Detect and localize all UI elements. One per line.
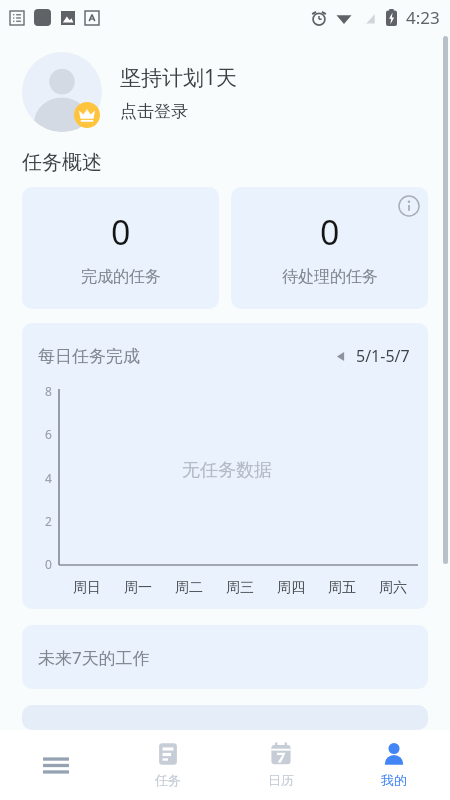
button[interactable]: 日历	[224, 730, 337, 800]
staticText: 周三	[226, 579, 254, 597]
staticText: 未来7天的工作	[38, 646, 150, 669]
staticText: 8	[45, 383, 52, 399]
staticText: 2	[45, 513, 52, 529]
button[interactable]: 上一周	[334, 345, 410, 367]
staticText: 周六	[379, 579, 407, 597]
button[interactable]: 菜单	[0, 730, 112, 800]
staticText: 0	[45, 556, 52, 572]
staticText: 4:23	[406, 6, 440, 29]
staticText: 我的	[381, 772, 407, 788]
staticText: 周四	[277, 579, 305, 597]
button[interactable]: 未来7天的工作	[22, 625, 428, 689]
staticText: 周二	[175, 579, 203, 597]
staticText: 待处理的任务	[282, 267, 378, 287]
button[interactable]: 信息	[398, 195, 420, 217]
button[interactable]: 任务	[112, 730, 224, 800]
staticText: 周五	[328, 579, 356, 597]
staticText: 0	[320, 209, 340, 255]
button[interactable]: 我的	[337, 730, 450, 800]
button[interactable]: 0	[22, 187, 219, 309]
staticText: 周日	[73, 579, 101, 597]
staticText: 日历	[268, 772, 294, 788]
staticText: 每日任务完成	[38, 346, 140, 367]
staticText: 任务概述	[22, 150, 102, 175]
staticText: 无任务数据	[182, 459, 272, 482]
staticText: 周一	[124, 579, 152, 597]
staticText: 0	[111, 209, 131, 255]
button[interactable]: 坚持计划1天	[22, 52, 428, 132]
other: 上一周	[334, 350, 347, 363]
staticText: 5/1-5/7	[356, 345, 410, 367]
staticText: 4	[45, 470, 52, 486]
staticText: 6	[45, 426, 52, 442]
staticText: 点击登录	[120, 101, 188, 122]
button[interactable]: 0	[231, 187, 428, 309]
staticText: 任务	[155, 772, 181, 788]
staticText: 坚持计划1天	[120, 63, 238, 92]
staticText: 完成的任务	[81, 267, 161, 287]
